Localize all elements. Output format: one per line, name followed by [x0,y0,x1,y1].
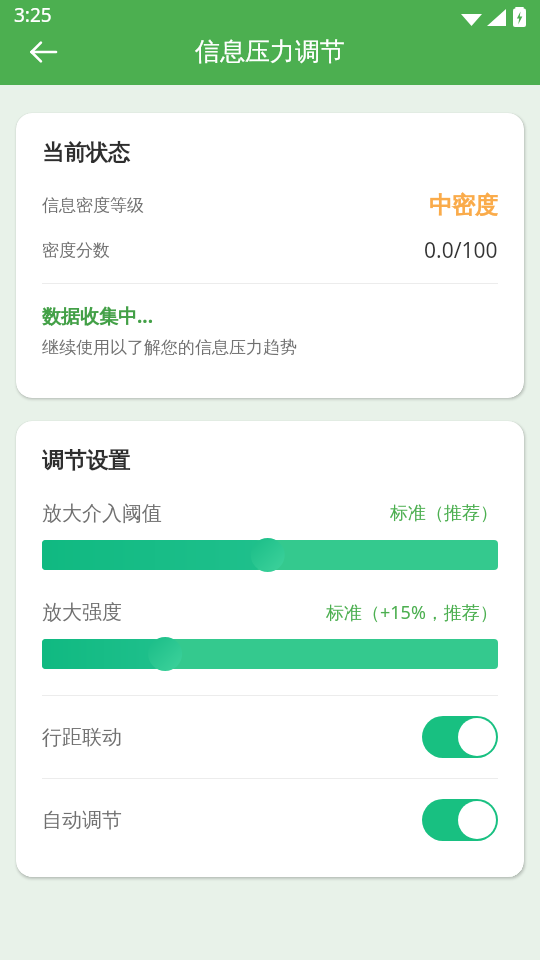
staticText: 放大强度 [42,600,122,625]
button[interactable]: 自动调节 [42,779,498,861]
staticText: 自动调节 [42,808,122,833]
staticText: 中密度 [429,191,498,220]
staticText: 行距联动 [42,725,122,750]
staticText: 密度分数 [42,240,110,261]
staticText: 数据收集中... [42,303,154,329]
staticText: 调节设置 [42,447,130,475]
button[interactable]: 放大强度 [42,600,498,671]
staticText: 3:25 [14,2,52,28]
button[interactable]: 当前状态 [16,113,524,398]
staticText: 信息压力调节 [195,36,345,67]
staticText: 0.0/100 [424,236,498,265]
staticText: 标准（+15%，推荐） [326,600,498,625]
button[interactable]: 行距联动 [42,696,498,778]
staticText: 信息密度等级 [42,195,144,216]
button[interactable]: 放大介入阈值 [42,501,498,572]
staticText: 当前状态 [42,139,130,167]
staticText: 标准（推荐） [390,502,498,525]
button[interactable]: Back [14,23,72,81]
staticText: 放大介入阈值 [42,501,162,526]
staticText: 继续使用以了解您的信息压力趋势 [42,337,297,358]
